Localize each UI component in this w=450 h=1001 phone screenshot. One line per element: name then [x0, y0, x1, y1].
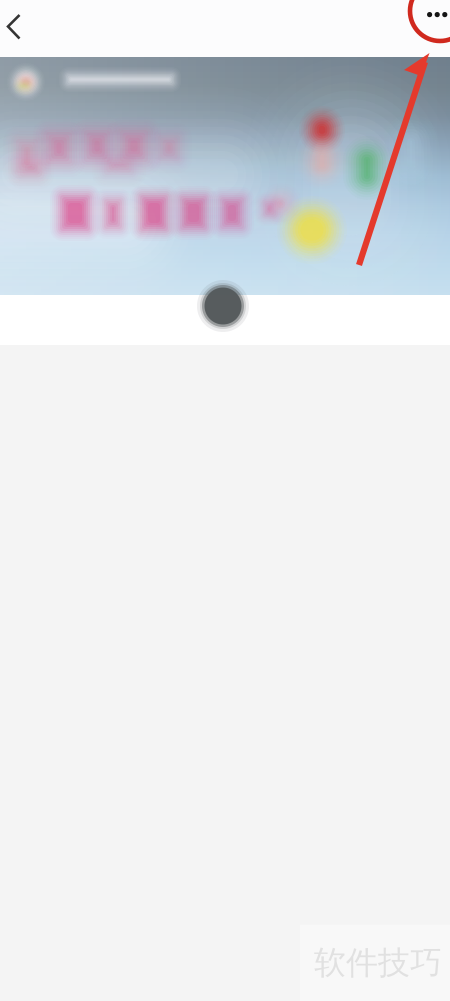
- staticText: 软件技巧: [314, 943, 442, 983]
- button[interactable]: Back: [0, 0, 39, 54]
- button[interactable]: More options: [411, 0, 450, 36]
